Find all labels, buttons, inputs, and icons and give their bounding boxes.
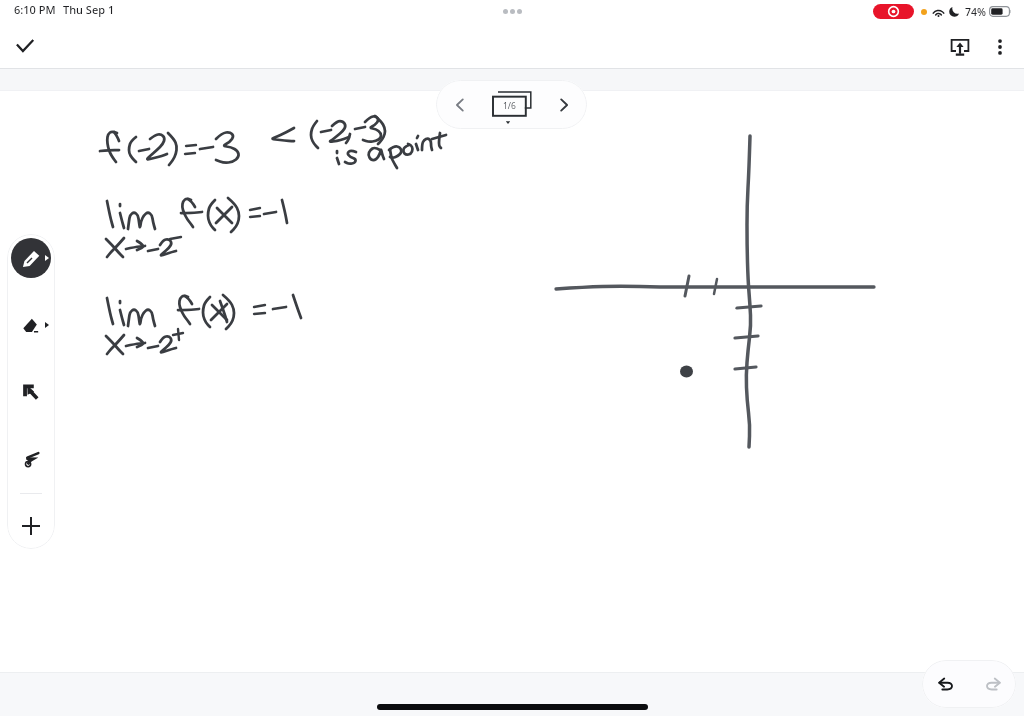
- button[interactable]: Screen recording: [873, 4, 914, 19]
- button[interactable]: Add tool: [11, 506, 51, 546]
- button[interactable]: More options: [980, 27, 1020, 67]
- staticText: 6:10 PM: [14, 2, 56, 17]
- staticText: Thu Sep 1: [63, 2, 115, 17]
- button[interactable]: Undo: [922, 660, 969, 708]
- staticText: 1/6: [503, 100, 516, 112]
- button[interactable]: Next page: [540, 80, 587, 129]
- button[interactable]: Pages: [483, 80, 540, 129]
- button[interactable]: Present to screen: [940, 27, 980, 67]
- button[interactable]: Previous page: [436, 80, 483, 129]
- button[interactable]: Done: [6, 28, 44, 66]
- staticText: 74%: [965, 5, 986, 19]
- button[interactable]: Laser pointer: [11, 439, 51, 479]
- button[interactable]: Eraser tool: [11, 305, 51, 345]
- button[interactable]: Redo: [969, 660, 1016, 708]
- button[interactable]: Selection tool: [11, 372, 51, 412]
- button[interactable]: Pen tool: [11, 238, 51, 278]
